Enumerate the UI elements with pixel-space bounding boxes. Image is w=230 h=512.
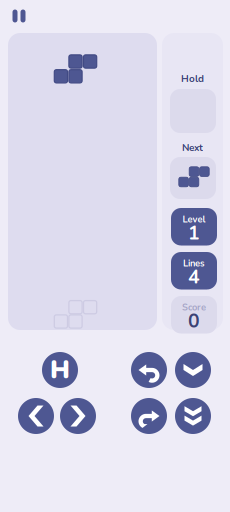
button[interactable]: Soft drop	[175, 352, 211, 388]
staticText: Level	[182, 213, 205, 226]
button[interactable]: Rotate clockwise	[131, 398, 167, 434]
button[interactable]: Hard drop	[175, 398, 211, 434]
staticText: 1	[188, 220, 200, 246]
button[interactable]: Hold piece	[42, 352, 78, 388]
staticText: 4	[188, 264, 200, 290]
staticText: Score	[182, 301, 206, 314]
staticText: Lines	[183, 257, 205, 270]
staticText: 0	[188, 308, 200, 334]
staticText: H	[50, 353, 70, 387]
button[interactable]: Move left	[18, 398, 54, 434]
staticText: Next	[182, 141, 203, 155]
button[interactable]: Pause	[6, 5, 32, 27]
button[interactable]: Rotate counterclockwise	[131, 352, 167, 388]
button[interactable]: Move right	[60, 398, 96, 434]
staticText: Hold	[181, 72, 204, 86]
